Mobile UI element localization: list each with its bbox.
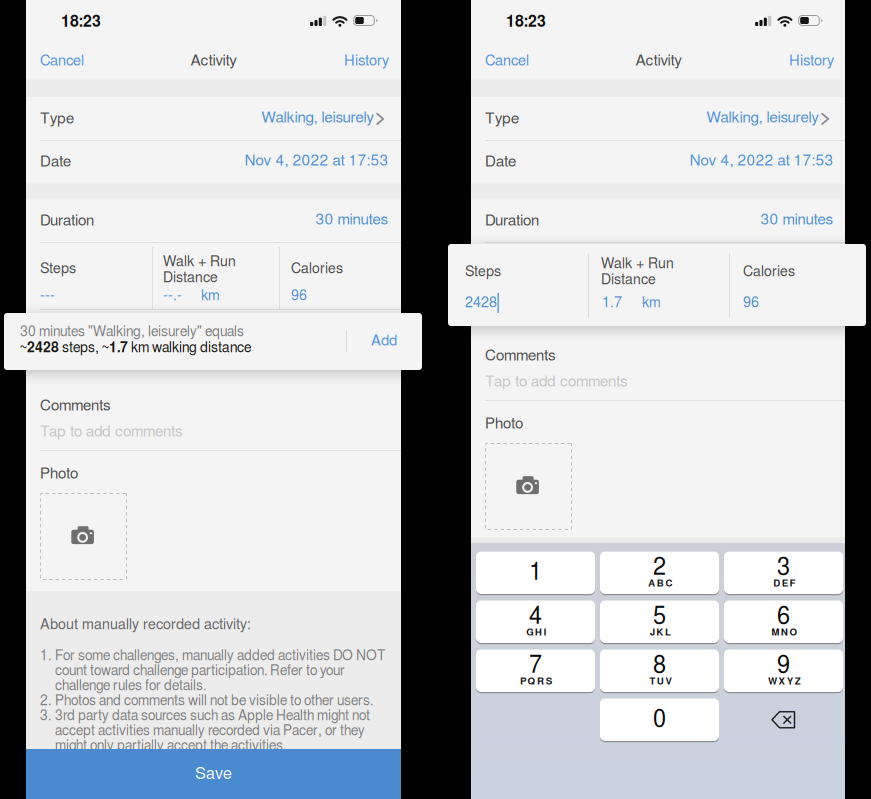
staticText: Distance	[163, 271, 218, 285]
staticText: --.-	[163, 289, 182, 303]
staticText: Cancel	[40, 54, 84, 68]
staticText: Cancel	[485, 54, 529, 68]
button[interactable]: History	[315, 42, 389, 80]
staticText: Steps	[485, 262, 521, 276]
button[interactable]: Save	[26, 749, 401, 799]
staticText: Duration	[40, 213, 94, 229]
button[interactable]	[40, 418, 401, 446]
staticText: History	[789, 54, 834, 68]
staticText: count toward challenge participation. Re…	[55, 664, 345, 678]
staticText: ---	[40, 289, 55, 303]
staticText: km	[642, 296, 661, 310]
staticText: Duration	[485, 213, 539, 229]
staticText: 2428	[485, 289, 517, 303]
staticText: Walking, leisurely	[261, 110, 373, 126]
staticText: accept activities manually recorded via …	[55, 724, 365, 738]
staticText: 7	[529, 654, 542, 677]
button[interactable]: Cancel	[40, 42, 114, 80]
staticText: 5	[653, 605, 666, 628]
staticText: 4	[529, 605, 542, 628]
staticText: challenge rules for details.	[55, 679, 206, 693]
staticText: 9	[777, 654, 790, 677]
button[interactable]: 0	[0, 0, 119, 44]
staticText: 3.	[40, 709, 51, 723]
staticText: Calories	[743, 265, 795, 279]
staticText: might only partially accept the activiti…	[55, 739, 286, 753]
staticText: WXYZ	[768, 677, 801, 686]
button[interactable]: History	[760, 42, 834, 80]
button[interactable]: Add photo	[0, 0, 871, 799]
button[interactable]: Add photo	[0, 0, 871, 799]
staticText: 2428	[465, 296, 497, 310]
staticText: km	[201, 289, 220, 303]
staticText: Tap to add comments	[485, 374, 628, 390]
staticText: JKL	[650, 628, 671, 637]
button[interactable]: 4	[0, 0, 119, 44]
button[interactable]	[485, 368, 846, 396]
button[interactable]: 8	[0, 0, 119, 44]
button[interactable]: 9	[0, 0, 119, 44]
staticText: 1.7	[608, 289, 628, 303]
staticText: Walk + Run	[163, 255, 236, 269]
staticText: 30 minutes "Walking, leisurely" equals	[20, 325, 244, 339]
button[interactable]: Cancel	[485, 42, 559, 80]
staticText: Walking, leisurely	[706, 110, 818, 126]
staticText: Calories	[291, 262, 343, 276]
button[interactable]: 6	[0, 0, 119, 44]
staticText: 18:23	[506, 14, 546, 30]
staticText: PQRS	[520, 677, 553, 686]
staticText: Steps	[465, 265, 501, 279]
staticText: Walk + Run	[608, 255, 681, 269]
staticText: Comments	[485, 348, 556, 364]
staticText: Distance	[601, 273, 656, 287]
staticText: 1	[529, 561, 542, 584]
staticText: Photo	[485, 416, 523, 432]
staticText: 18:23	[61, 14, 101, 30]
staticText: 3	[777, 556, 790, 579]
staticText: Type	[485, 111, 519, 127]
staticText: Comments	[40, 398, 111, 414]
staticText: ~2428 steps, ~1.7 km walking distance	[20, 341, 251, 355]
staticText: GHI	[526, 628, 546, 637]
staticText: Walk + Run	[601, 257, 674, 271]
staticText: 96	[743, 296, 759, 310]
button[interactable]: 3	[0, 0, 119, 44]
staticText: Date	[40, 154, 71, 170]
staticText: MNO	[771, 628, 797, 637]
staticText: 96	[291, 289, 307, 303]
staticText: History	[344, 54, 389, 68]
button[interactable]: 7	[0, 0, 119, 44]
staticText: Nov 4, 2022 at 17:53	[689, 153, 833, 169]
staticText: 30 minutes	[315, 212, 388, 228]
staticText: 3rd party data sources such as Apple Hea…	[55, 709, 370, 723]
staticText: Activity	[190, 53, 236, 69]
staticText: 1.	[40, 649, 51, 663]
staticText: Add	[371, 334, 397, 348]
staticText: 0	[653, 708, 666, 731]
staticText: Photos and comments will not be visible …	[55, 694, 373, 708]
staticText: km	[646, 289, 665, 303]
button[interactable]	[26, 98, 401, 139]
staticText: Steps	[40, 262, 76, 276]
button[interactable]	[471, 98, 846, 139]
staticText: 2.	[40, 694, 51, 708]
staticText: About manually recorded activity:	[40, 618, 251, 632]
staticText: 30 minutes	[760, 212, 833, 228]
staticText: 6	[777, 605, 790, 628]
staticText: Date	[485, 154, 516, 170]
button[interactable]: 5	[0, 0, 119, 44]
staticText: DEF	[773, 579, 795, 588]
staticText: TUV	[649, 677, 671, 686]
button[interactable]: 2	[0, 0, 119, 44]
staticText: 96	[736, 289, 752, 303]
staticText: Nov 4, 2022 at 17:53	[244, 153, 388, 169]
button[interactable]: Add	[346, 312, 422, 369]
staticText: For some challenges, manually added acti…	[55, 649, 386, 663]
button[interactable]: Delete	[724, 698, 843, 741]
staticText: 8	[653, 654, 666, 677]
staticText: 1.7	[602, 296, 622, 310]
staticText: Calories	[736, 262, 788, 276]
staticText: ABC	[648, 579, 672, 588]
staticText: 2	[653, 556, 666, 579]
button[interactable]: 1	[0, 0, 119, 44]
